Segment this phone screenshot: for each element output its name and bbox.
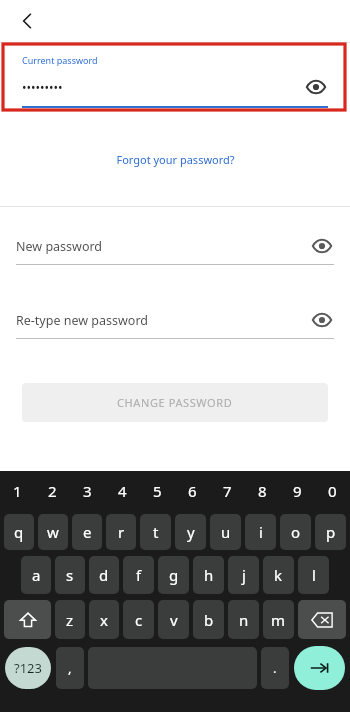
button[interactable]: . [261,647,289,689]
button[interactable]: Backspace [298,600,346,639]
staticText: 7 [223,481,232,501]
button[interactable]: w [38,514,68,550]
staticText: 5 [153,481,162,501]
button[interactable]: b [193,600,224,639]
button[interactable]: c [123,600,154,639]
staticText: d [99,565,109,585]
staticText: v [170,610,178,630]
button[interactable]: e [72,514,102,550]
button[interactable]: x [89,600,119,639]
staticText: 4 [118,481,127,501]
button[interactable]: u [210,514,241,550]
button[interactable]: t [140,514,171,550]
staticText: , [68,659,72,677]
staticText: 2 [48,481,57,501]
staticText: Current password [22,54,98,66]
button[interactable]: y [175,514,206,550]
staticText: z [66,610,74,630]
staticText: y [187,522,195,542]
staticText: n [239,610,249,630]
staticText: k [274,565,283,585]
staticText: w [47,522,59,542]
button[interactable]: , [56,647,84,689]
button[interactable]: h [193,556,224,594]
button[interactable]: 7 [210,471,245,511]
button[interactable]: Forgot your password? [108,146,243,173]
button[interactable]: CHANGE PASSWORD [22,383,328,422]
button[interactable]: Enter [294,646,345,690]
staticText: Forgot your password? [116,152,235,167]
staticText: 9 [293,481,302,501]
button[interactable]: p [315,514,346,550]
button[interactable]: v [158,600,189,639]
button[interactable]: Shift [4,600,51,639]
staticText: 1 [13,481,22,501]
staticText: r [118,522,125,542]
staticText: j [242,565,246,585]
staticText: l [312,565,316,585]
staticText: o [291,522,301,542]
button[interactable]: Show current password [304,75,328,99]
button[interactable]: 8 [245,471,280,511]
staticText: 3 [83,481,92,501]
staticText: . [273,659,277,677]
button[interactable]: Show re-typed password [310,308,334,332]
staticText: x [100,610,108,630]
staticText: CHANGE PASSWORD [117,395,233,410]
button[interactable]: 0 [315,471,350,511]
button[interactable]: Re-type new password [16,308,334,332]
button[interactable]: 5 [140,471,175,511]
staticText: e [83,522,92,542]
button[interactable]: i [245,514,276,550]
button[interactable]: 4 [105,471,140,511]
button[interactable]: z [55,600,85,639]
button[interactable]: m [263,600,294,639]
button[interactable]: a [21,556,51,594]
staticText: t [153,522,159,542]
button[interactable]: 9 [280,471,315,511]
button[interactable]: 3 [70,471,105,511]
button[interactable]: 2 [35,471,70,511]
button[interactable]: q [4,514,34,550]
button[interactable]: Back [10,3,46,39]
button[interactable]: n [228,600,259,639]
button[interactable]: 6 [175,471,210,511]
staticText: a [32,565,41,585]
button[interactable]: r [106,514,136,550]
button[interactable]: k [263,556,294,594]
staticText: 0 [328,481,337,501]
staticText: h [204,565,214,585]
staticText: New password [16,238,310,255]
button[interactable]: f [123,556,154,594]
button[interactable]: ?123 [5,647,51,689]
staticText: s [66,565,74,585]
button[interactable]: Show new password [310,234,334,258]
button[interactable]: s [55,556,85,594]
staticText: Re-type new password [16,312,310,329]
staticText: c [135,610,143,630]
button[interactable]: g [158,556,189,594]
button[interactable]: d [89,556,119,594]
button[interactable]: o [280,514,311,550]
staticText: p [326,522,336,542]
staticText: m [271,610,286,630]
button[interactable]: New password [16,234,334,258]
staticText: i [259,522,263,542]
staticText: b [204,610,214,630]
button[interactable]: l [298,556,329,594]
button[interactable]: j [228,556,259,594]
staticText: 6 [188,481,197,501]
staticText: ••••••••• [22,79,304,95]
staticText: f [136,565,142,585]
staticText: 8 [258,481,267,501]
staticText: q [14,522,24,542]
staticText: u [221,522,231,542]
button[interactable]: 1 [0,471,35,511]
staticText: ?123 [14,659,42,677]
staticText: g [169,565,179,585]
